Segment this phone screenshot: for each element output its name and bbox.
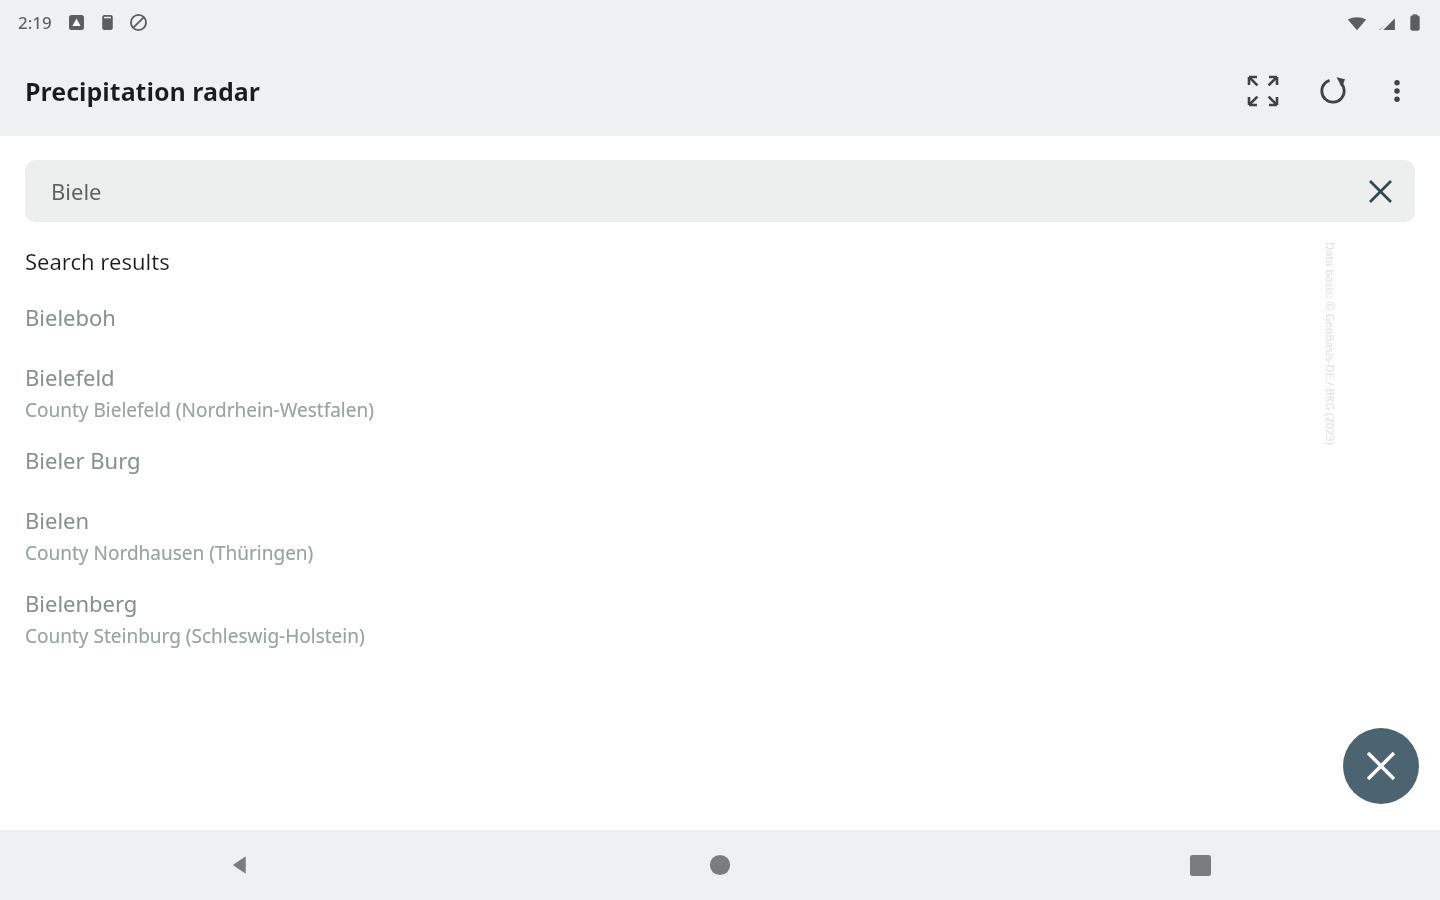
button[interactable]: More options	[1368, 62, 1426, 120]
staticText: Bielen	[25, 505, 90, 535]
staticText: Biele	[51, 176, 102, 206]
button[interactable]: Bielefeld	[0, 358, 1440, 441]
staticText: Bielenberg	[25, 588, 138, 618]
button[interactable]: Bielenberg	[0, 584, 1440, 667]
button[interactable]: Biele	[25, 160, 1415, 222]
staticText: Bieleboh	[25, 302, 116, 332]
staticText: Bieler Burg	[25, 445, 141, 475]
staticText: Bielefeld	[25, 362, 115, 392]
button[interactable]: Home	[480, 830, 960, 900]
staticText: Data basis: © GeoBasis-DE / BKG (2023)	[1323, 242, 1338, 445]
button[interactable]: Clear search	[1357, 168, 1403, 214]
button[interactable]: Back	[0, 830, 480, 900]
button[interactable]: Fullscreen	[1234, 62, 1292, 120]
staticText: County Steinburg (Schleswig-Holstein)	[25, 623, 365, 649]
staticText: 2:19	[18, 11, 52, 34]
button[interactable]: Recent apps	[960, 830, 1440, 900]
staticText: County Nordhausen (Thüringen)	[25, 540, 314, 566]
staticText: County Bielefeld (Nordrhein-Westfalen)	[25, 397, 374, 423]
button[interactable]: Close	[1343, 728, 1419, 804]
button[interactable]: Bieler Burg	[0, 441, 1440, 501]
staticText: Search results	[25, 246, 170, 276]
staticText: Precipitation radar	[25, 74, 260, 108]
button[interactable]: Refresh	[1304, 62, 1362, 120]
button[interactable]: Bielen	[0, 501, 1440, 584]
button[interactable]: Bieleboh	[0, 298, 1440, 358]
